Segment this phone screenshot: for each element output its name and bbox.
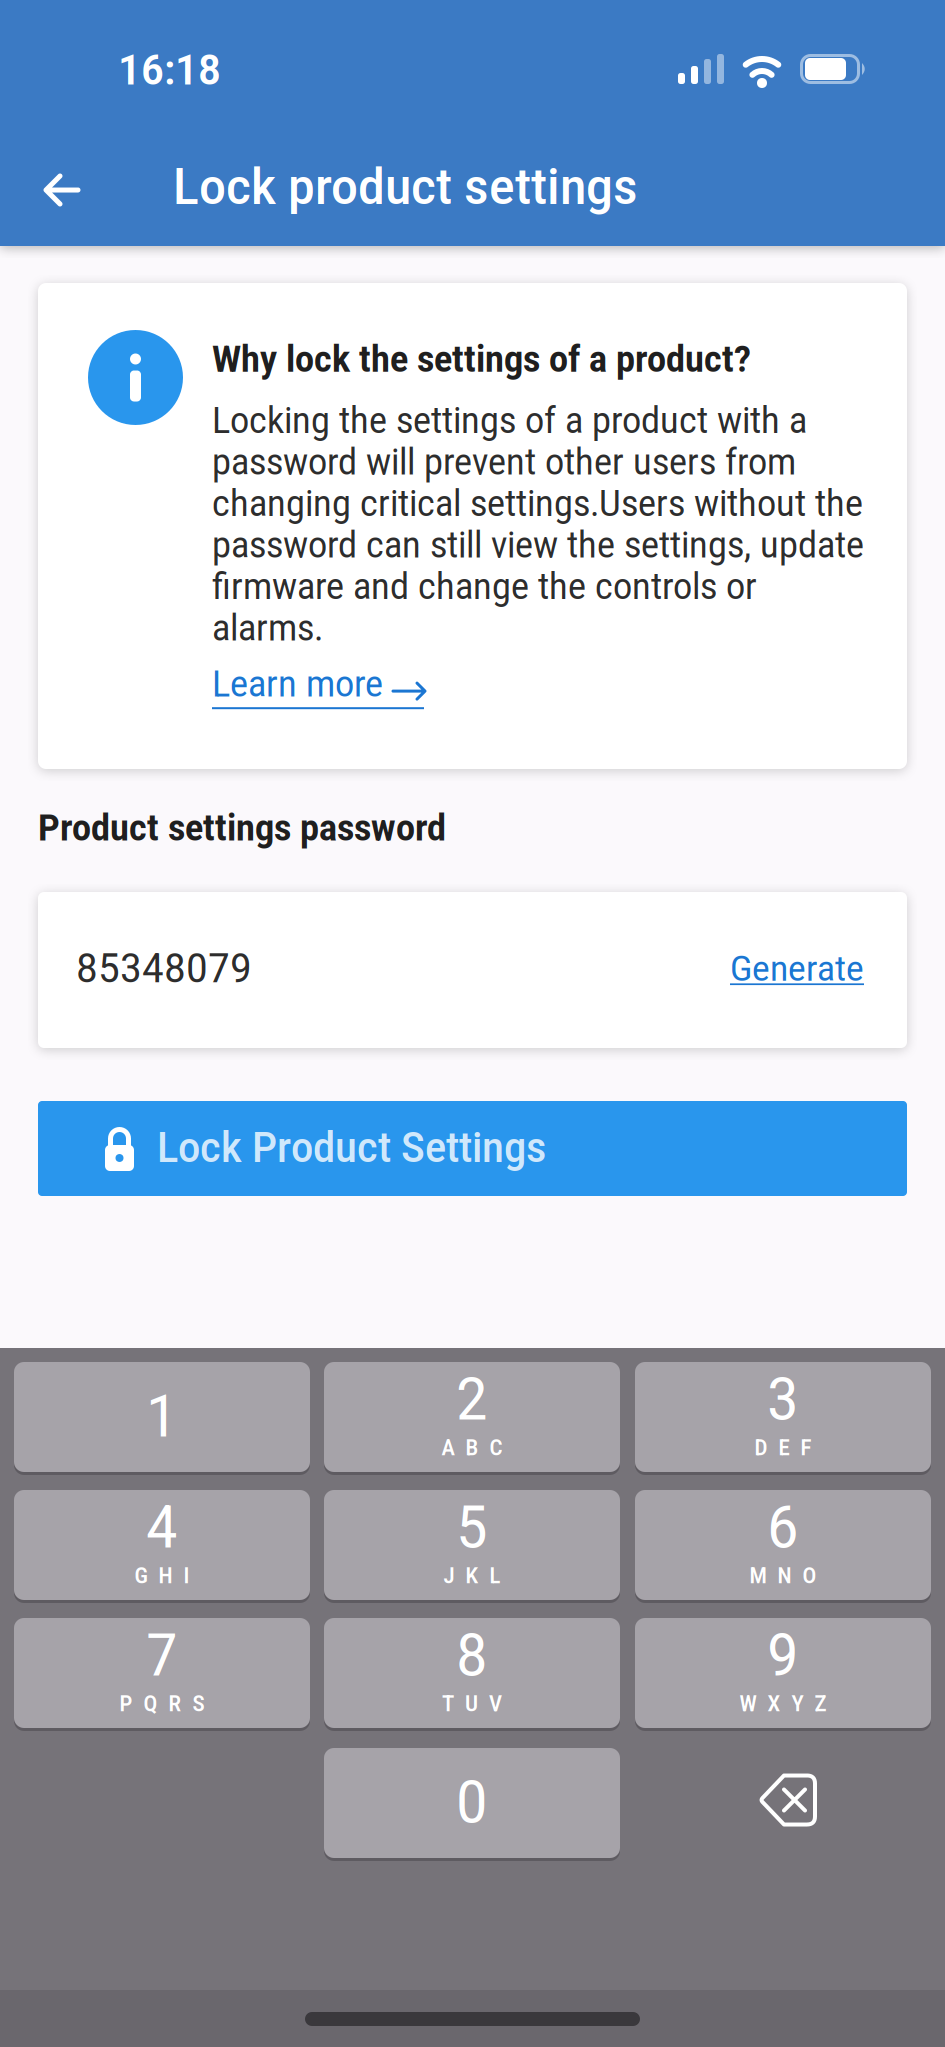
button[interactable]: 1 <box>14 1362 310 1475</box>
button[interactable]: Lock Product Settings <box>38 1101 907 1196</box>
staticText: 1 <box>146 1381 178 1451</box>
button[interactable]: 5 <box>324 1490 620 1603</box>
staticText: 85348079 <box>76 944 252 992</box>
staticText: T U V <box>442 1691 502 1716</box>
staticText: changing critical settings.Users without… <box>212 483 863 525</box>
staticText: Product settings password <box>38 807 446 849</box>
button[interactable]: 8 <box>324 1618 620 1731</box>
staticText: W X Y Z <box>739 1691 826 1716</box>
button[interactable]: Delete <box>635 1748 931 1858</box>
staticText: firmware and change the controls or <box>212 566 757 608</box>
staticText: J K L <box>443 1563 500 1588</box>
staticText: Learn more <box>212 663 383 705</box>
staticText: password will prevent other users from <box>212 441 796 483</box>
staticText: D E F <box>754 1435 811 1460</box>
staticText: M N O <box>749 1563 816 1588</box>
button[interactable]: 0 <box>324 1748 620 1861</box>
staticText: Lock Product Settings <box>157 1123 546 1172</box>
staticText: 4 <box>146 1492 178 1562</box>
button[interactable]: 2 <box>324 1362 620 1475</box>
button[interactable]: Back <box>30 159 92 221</box>
staticText: 8 <box>456 1620 488 1690</box>
staticText: 6 <box>767 1492 799 1562</box>
button[interactable]: 6 <box>635 1490 931 1603</box>
staticText: Generate <box>730 948 864 989</box>
staticText: password can still view the settings, up… <box>212 524 864 566</box>
button[interactable]: Generate <box>720 938 874 999</box>
button[interactable]: 7 <box>14 1618 310 1731</box>
button[interactable]: 9 <box>635 1618 931 1731</box>
staticText: Lock product settings <box>173 157 638 216</box>
staticText: A B C <box>441 1435 502 1460</box>
staticText: 0 <box>456 1767 488 1837</box>
staticText: G H I <box>134 1563 189 1588</box>
button[interactable]: Learn more <box>212 649 427 709</box>
staticText: alarms. <box>212 607 323 649</box>
button[interactable]: 3 <box>635 1362 931 1475</box>
staticText: P Q R S <box>119 1691 204 1716</box>
staticText: 9 <box>767 1620 799 1690</box>
staticText: 5 <box>456 1492 488 1562</box>
staticText: Why lock the settings of a product? <box>212 338 751 381</box>
staticText: 2 <box>456 1364 488 1434</box>
staticText: 16:18 <box>118 45 221 95</box>
button[interactable]: 4 <box>14 1490 310 1603</box>
staticText: 7 <box>146 1620 178 1690</box>
staticText: Locking the settings of a product with a <box>212 400 807 442</box>
staticText: 3 <box>767 1364 799 1434</box>
